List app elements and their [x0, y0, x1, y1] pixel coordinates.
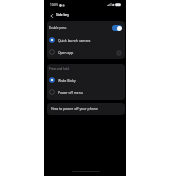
button[interactable]: Quick launch camera — [47, 34, 125, 46]
staticText: Open app — [58, 50, 74, 54]
button[interactable]: How to power off your phone — [47, 103, 125, 115]
button[interactable]: Back — [46, 10, 57, 21]
button[interactable]: Settings — [115, 49, 122, 56]
button[interactable]: Power off menu — [47, 86, 125, 98]
button[interactable]: Double press toggle — [112, 25, 122, 31]
staticText: Press and hold — [49, 67, 70, 71]
staticText: How to power off your phone — [51, 106, 98, 111]
button[interactable]: Wake Bixby — [47, 74, 125, 86]
staticText: Double press — [49, 26, 67, 30]
button[interactable]: Double press — [47, 21, 125, 34]
staticText: Side key — [56, 12, 69, 16]
staticText: Quick launch camera — [58, 38, 91, 42]
staticText: 10:05 — [50, 3, 58, 7]
button[interactable]: Open app — [47, 46, 125, 58]
staticText: Power off menu — [58, 90, 83, 94]
staticText: Wake Bixby — [58, 78, 76, 82]
